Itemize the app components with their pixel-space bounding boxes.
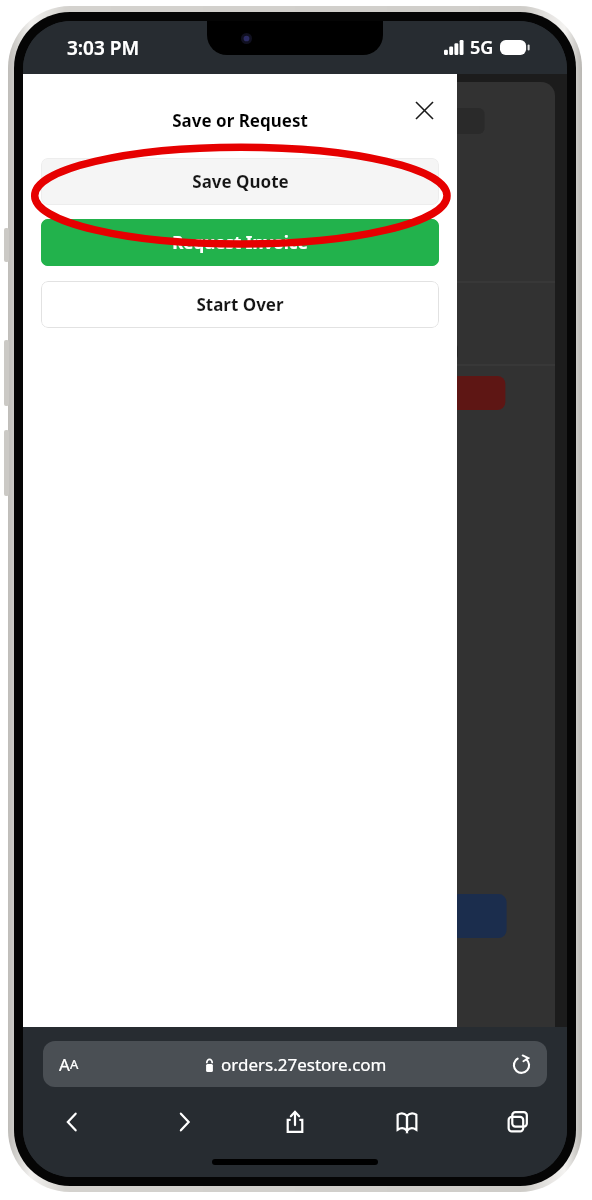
staticText: 5G: [470, 35, 494, 60]
staticText: Save Quote: [192, 170, 289, 193]
staticText: A: [59, 1053, 70, 1076]
staticText: Save or Request: [172, 109, 308, 132]
staticText: Start Over: [196, 293, 284, 316]
button[interactable]: Forward: [161, 1099, 207, 1145]
button[interactable]: Close: [407, 94, 441, 126]
staticText: Request Invoice: [172, 231, 308, 254]
staticText: 3:03 PM: [67, 35, 140, 61]
button[interactable]: Back: [49, 1099, 95, 1145]
button[interactable]: A: [43, 1041, 547, 1087]
staticText: A: [70, 1055, 79, 1073]
button[interactable]: Request Invoice: [41, 219, 439, 266]
staticText: orders.27estore.com: [221, 1053, 387, 1076]
button[interactable]: Share: [272, 1099, 318, 1145]
button[interactable]: Start Over: [41, 281, 439, 328]
button[interactable]: Bookmarks: [384, 1099, 430, 1145]
button[interactable]: Save Quote: [41, 158, 439, 205]
button[interactable]: Tabs: [495, 1099, 541, 1145]
other: Reload: [512, 1055, 531, 1074]
